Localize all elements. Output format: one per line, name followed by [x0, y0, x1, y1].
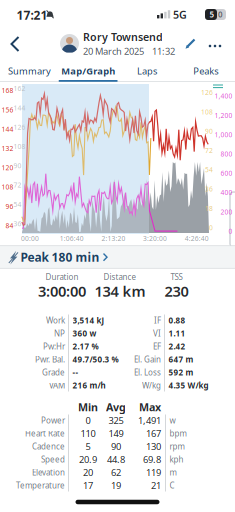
staticText: m [169, 467, 176, 478]
staticText: Elevation [32, 467, 65, 478]
button[interactable]: Rory Townsend [60, 30, 175, 57]
button[interactable]: More [204, 36, 226, 56]
staticText: Speed [41, 454, 65, 465]
staticText: 134 km [94, 281, 145, 301]
staticText: 360 w [72, 328, 96, 339]
button[interactable]: Edit [182, 36, 197, 51]
staticText: Laps [137, 65, 157, 77]
staticText: 90 [205, 127, 213, 136]
staticText: IF [154, 315, 161, 326]
staticText: 647 m [168, 354, 193, 365]
staticText: Peaks [193, 65, 218, 77]
staticText: VAM [49, 380, 65, 391]
staticText: El. Loss [134, 367, 161, 378]
staticText: rpm [169, 441, 184, 452]
staticText: Rory Townsend [83, 30, 163, 44]
staticText: 84 [5, 221, 13, 230]
staticText: 21 [151, 479, 161, 492]
staticText: Max [139, 400, 161, 414]
staticText: 0 [209, 223, 213, 232]
staticText: 800 [220, 149, 232, 158]
staticText: 44.8 [107, 453, 125, 466]
staticText: 72 [13, 181, 21, 189]
staticText: Temperature [16, 480, 65, 491]
staticText: 2.42 [168, 341, 185, 352]
staticText: Map/Graph [61, 65, 115, 77]
staticText: 110 [80, 427, 95, 440]
staticText: 130 [146, 440, 161, 453]
staticText: 149 [108, 427, 123, 440]
staticText: 144 [13, 103, 25, 112]
staticText: 18 [205, 204, 213, 213]
staticText: 36 [205, 185, 213, 193]
staticText: 49.7/50.3 % [72, 354, 118, 365]
staticText: 1,000 [214, 130, 232, 139]
staticText: 4:26:40 [185, 234, 209, 243]
staticText: Pw:Hr [43, 341, 65, 352]
staticText: 108 [201, 107, 213, 116]
staticText: 3:20:00 [143, 234, 167, 243]
staticText: 4.35 W/kg [168, 380, 208, 391]
staticText: Min [78, 400, 98, 414]
staticText: 2:13:20 [101, 234, 125, 243]
staticText: Avg [106, 400, 126, 414]
staticText: TSS [170, 272, 182, 282]
staticText: 592 m [168, 367, 193, 378]
staticText: -- [72, 367, 78, 378]
staticText: 1,200 [214, 111, 232, 120]
button[interactable]: Map/Graph [59, 61, 118, 81]
staticText: 3,514 kJ [72, 315, 104, 326]
staticText: 162 [13, 84, 25, 93]
staticText: 0 [228, 227, 232, 236]
staticText: 126 [13, 123, 25, 132]
staticText: 230 [164, 281, 188, 301]
staticText: 2.17 % [72, 341, 98, 352]
staticText: 69.8 [143, 453, 161, 466]
staticText: 120 [1, 163, 13, 172]
staticText: C [169, 480, 174, 491]
staticText: 20.9 [79, 453, 97, 466]
staticText: 19 [111, 479, 121, 492]
staticText: Grade [42, 367, 65, 378]
staticText: 00:00 [21, 234, 39, 243]
staticText: bpm [169, 428, 186, 439]
staticText: 1:06:40 [60, 234, 84, 243]
staticText: 36 [13, 219, 21, 228]
staticText: EF [153, 341, 161, 352]
staticText: 96 [5, 202, 13, 211]
staticText: w [169, 415, 175, 426]
button[interactable]: Summary [0, 61, 59, 81]
staticText: 1,491 [138, 414, 161, 427]
staticText: W/kg [142, 380, 161, 391]
staticText: Duration [45, 272, 78, 282]
staticText: 54 [205, 165, 213, 174]
staticText: 5 [209, 9, 214, 20]
staticText: Work [46, 315, 65, 326]
staticText: El. Gain [134, 354, 161, 365]
staticText: 216 m/h [72, 380, 105, 391]
staticText: 54 [13, 200, 21, 209]
staticText: Distance [103, 272, 136, 282]
staticText: 72 [205, 146, 213, 155]
staticText: 1,400 [214, 92, 232, 100]
staticText: 90 [13, 161, 21, 170]
staticText: 156 [1, 105, 13, 114]
staticText: Power [41, 415, 65, 426]
button[interactable]: Peak 180 min [0, 246, 235, 268]
button[interactable]: Laps [117, 61, 176, 81]
staticText: 20 [83, 466, 93, 479]
staticText: 5G [173, 7, 187, 22]
staticText: 200 [220, 207, 232, 216]
button[interactable]: Back [0, 27, 30, 61]
staticText: NP [54, 328, 65, 339]
staticText: 108 [1, 183, 13, 191]
staticText: 0.88 [168, 315, 185, 326]
button[interactable]: Peaks [176, 61, 235, 81]
staticText: Summary [8, 65, 51, 77]
staticText: 400 [220, 188, 232, 197]
staticText: 132 [1, 144, 13, 153]
staticText: 17:21 [16, 7, 47, 23]
staticText: 168 [1, 86, 13, 95]
staticText: Peak 180 min [20, 249, 99, 265]
staticText: 3:00:00 [38, 281, 86, 301]
